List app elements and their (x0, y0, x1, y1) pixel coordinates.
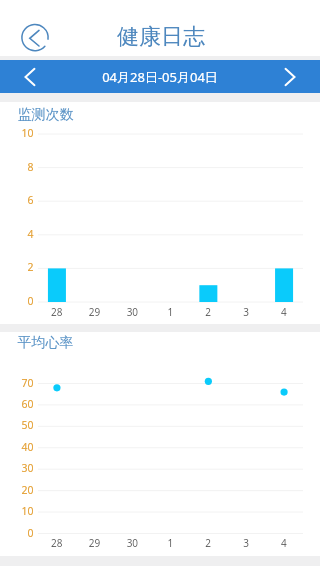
button[interactable]: Next week (260, 60, 320, 93)
staticText: 健康日志 (117, 23, 205, 51)
button[interactable]: Back (21, 24, 50, 53)
button[interactable]: Previous week (0, 60, 60, 93)
staticText: 04月28日-05月04日 (60, 68, 260, 86)
